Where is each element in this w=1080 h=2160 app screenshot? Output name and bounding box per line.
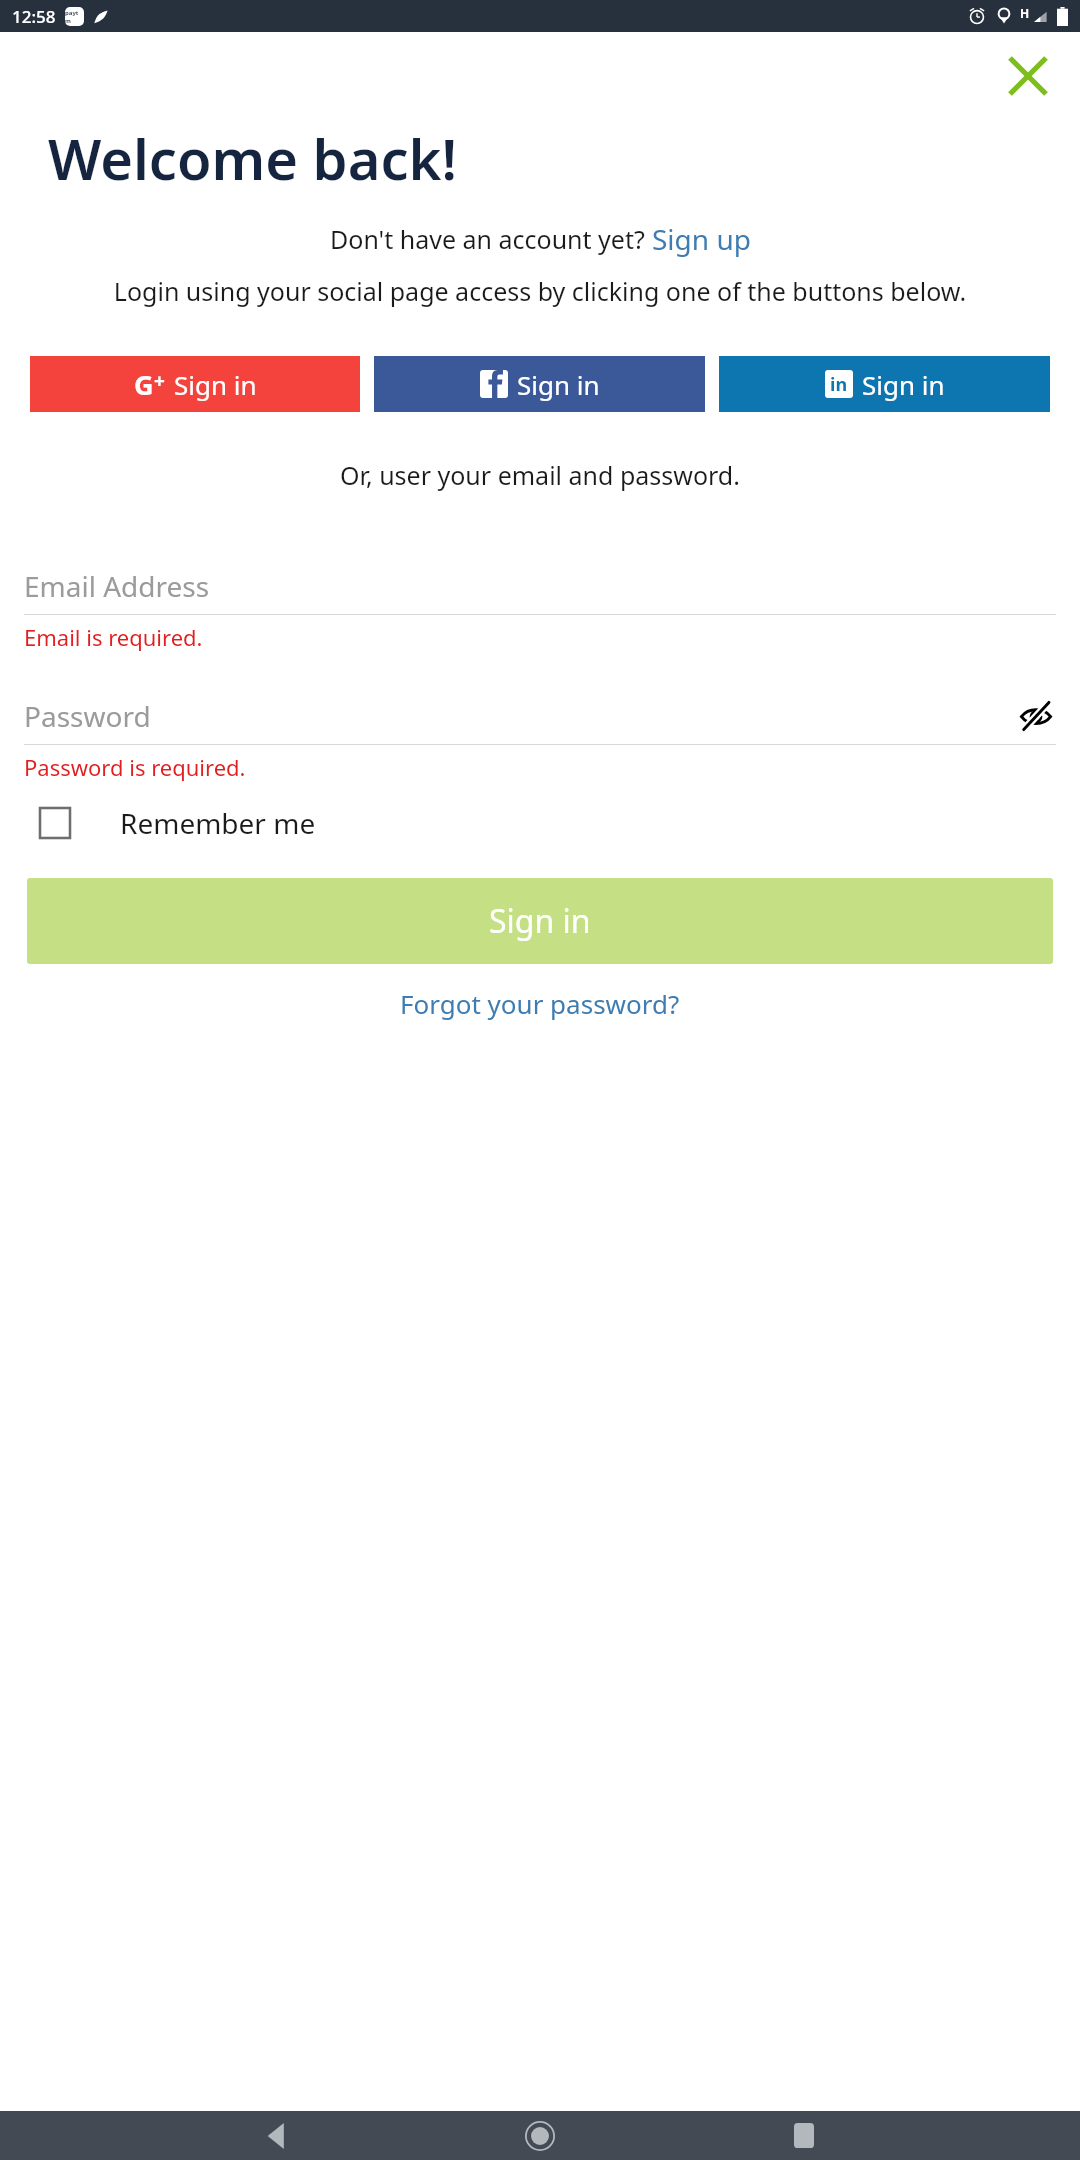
staticText: + (154, 368, 165, 394)
button[interactable]: Recents (776, 2111, 832, 2160)
staticText: G (134, 366, 154, 403)
button[interactable]: Close (1006, 54, 1050, 98)
staticText: Email is required. (24, 622, 203, 652)
staticText: Sign in (517, 367, 600, 402)
staticText: paytm (65, 9, 84, 25)
staticText: Password is required. (24, 752, 246, 782)
staticText: in (830, 372, 848, 397)
staticText: Sign in (862, 367, 945, 402)
staticText: Sign in (174, 367, 257, 402)
staticText: Remember me (120, 804, 316, 842)
staticText: Welcome back! (48, 120, 457, 196)
button[interactable]: Sign in (374, 356, 705, 412)
staticText: H (1020, 5, 1030, 21)
button[interactable]: Forgot your password? (400, 986, 680, 1021)
staticText: Login using your social page access by c… (6, 274, 1074, 308)
button[interactable]: in (719, 356, 1050, 412)
button[interactable]: Back (248, 2111, 304, 2160)
button[interactable]: Home (512, 2111, 568, 2160)
button[interactable]: Email Address (24, 564, 1056, 608)
staticText: Don't have an account yet? (330, 222, 652, 256)
button[interactable]: Show password (1016, 696, 1056, 736)
button[interactable]: G (30, 356, 360, 412)
staticText: Forgot your password? (400, 986, 680, 1021)
button[interactable]: Sign in (27, 878, 1053, 964)
staticText: Email Address (24, 567, 210, 605)
button[interactable]: Remember me (24, 792, 1080, 854)
button[interactable]: Sign up (652, 220, 751, 258)
staticText: Sign up (652, 220, 751, 258)
staticText: Or, user your email and password. (0, 458, 1080, 492)
staticText: Sign in (489, 899, 591, 943)
staticText: Password (24, 697, 1016, 735)
staticText: 12:58 (12, 5, 56, 28)
